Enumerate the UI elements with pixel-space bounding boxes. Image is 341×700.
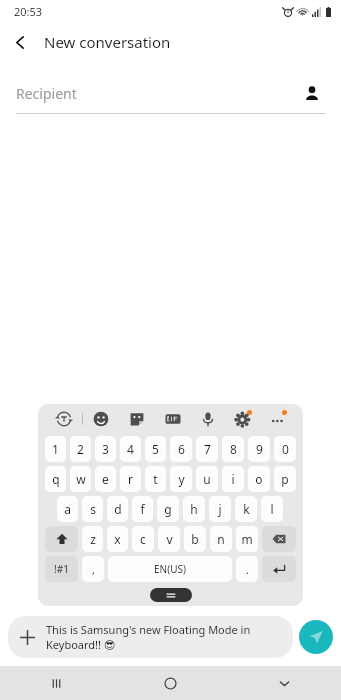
staticText: r [128,471,133,487]
button[interactable]: j [209,496,231,522]
button[interactable]: Move keyboard [150,588,192,602]
staticText: 4 [127,441,134,457]
button[interactable]: Add attachment [8,616,293,658]
button[interactable]: , [82,556,104,582]
staticText: h [190,501,198,517]
staticText: x [114,531,121,547]
button[interactable]: 4 [120,436,141,462]
staticText: 20:53 [14,4,43,19]
staticText: j [218,501,222,517]
staticText: 0 [282,441,289,457]
staticText: y [178,471,185,487]
button[interactable]: n [210,526,232,552]
staticText: i [231,471,235,487]
button[interactable]: . [236,556,258,582]
staticText: a [64,501,71,517]
button[interactable]: Shift [45,526,78,552]
staticText: . [246,562,249,577]
button[interactable]: f [132,496,153,522]
button[interactable]: e [95,466,116,492]
button[interactable]: 8 [222,436,244,462]
staticText: 8 [230,441,237,457]
button[interactable]: x [107,526,128,552]
button[interactable]: q [45,466,66,492]
staticText: p [281,471,289,487]
button[interactable]: Add attachment [8,618,46,656]
button[interactable]: c [132,526,154,552]
button[interactable]: o [248,466,270,492]
button[interactable]: d [107,496,128,522]
staticText: g [164,501,172,517]
staticText: , [92,562,95,577]
button[interactable]: k [235,496,257,522]
staticText: !#1 [54,562,69,576]
staticText: l [270,501,274,517]
button[interactable]: v [158,526,180,552]
button[interactable]: 3 [95,436,116,462]
staticText: n [217,531,225,547]
staticText: EN(US) [154,562,186,576]
button[interactable]: Voice input [190,404,225,434]
button[interactable]: h [183,496,205,522]
button[interactable]: r [120,466,141,492]
button[interactable]: a [57,496,78,522]
button[interactable]: Recipient [16,80,325,106]
button[interactable]: 2 [70,436,91,462]
button[interactable]: Hide keyboard [227,666,341,700]
button[interactable]: Home [113,666,227,700]
button[interactable]: Translate [46,404,82,434]
staticText: b [191,531,199,547]
button[interactable]: Emoji [83,404,119,434]
staticText: New conversation [44,32,171,52]
staticText: t [153,471,158,487]
staticText: d [114,501,122,517]
button[interactable]: 7 [196,436,218,462]
button[interactable]: 1 [45,436,66,462]
button[interactable]: !#1 [45,556,78,582]
button[interactable]: 0 [274,436,296,462]
staticText: k [243,501,250,517]
staticText: z [90,531,96,547]
button[interactable]: i [222,466,244,492]
button[interactable]: EN(US) [108,556,232,582]
staticText: u [203,471,211,487]
button[interactable]: 6 [170,436,192,462]
staticText: 9 [256,441,263,457]
button[interactable]: Recents [0,666,113,700]
button[interactable]: GIF [155,404,190,434]
staticText: 7 [204,441,211,457]
button[interactable]: b [184,526,206,552]
staticText: c [140,531,146,547]
button[interactable]: Back [0,22,40,62]
staticText: m [241,531,253,547]
button[interactable]: Keyboard settings [225,404,260,434]
button[interactable]: y [170,466,192,492]
staticText: e [102,471,109,487]
button[interactable]: z [82,526,103,552]
staticText: Recipient [16,84,299,103]
staticText: w [76,471,86,487]
button[interactable]: More options [260,404,295,434]
staticText: o [255,471,263,487]
button[interactable]: Add contact [299,80,325,106]
button[interactable]: Enter [262,556,296,582]
button[interactable]: Send [299,620,333,654]
button[interactable]: m [236,526,258,552]
button[interactable]: u [196,466,218,492]
staticText: 6 [178,441,185,457]
button[interactable]: Backspace [262,526,296,552]
button[interactable]: Stickers [119,404,155,434]
button[interactable]: g [157,496,179,522]
staticText: 2 [77,441,84,457]
button[interactable]: 5 [145,436,166,462]
button[interactable]: w [70,466,91,492]
staticText: 5 [152,441,159,457]
button[interactable]: 9 [248,436,270,462]
button[interactable]: p [274,466,296,492]
staticText: 1 [52,441,59,457]
staticText: f [140,501,145,517]
button[interactable]: l [261,496,283,522]
button[interactable]: s [82,496,103,522]
button[interactable]: t [145,466,166,492]
staticText: q [52,471,60,487]
